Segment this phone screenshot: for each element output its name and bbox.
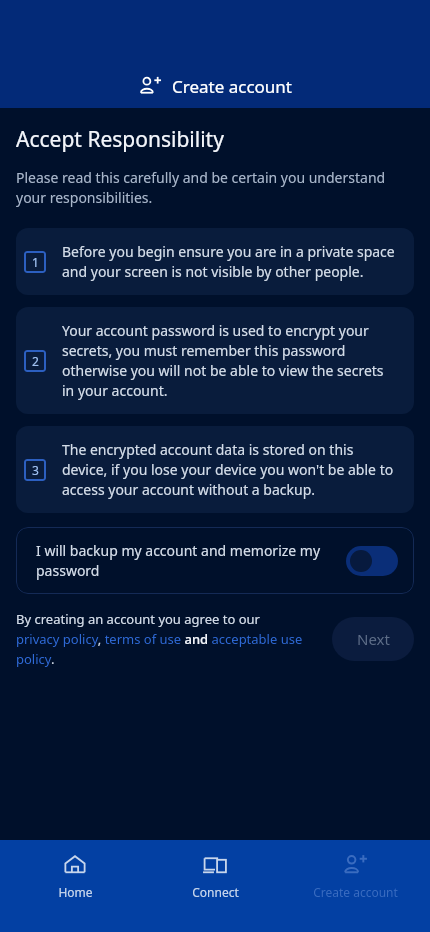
staticText: I will backup my account and memorize my… <box>36 541 334 580</box>
staticText: 3 <box>32 462 39 478</box>
staticText: Accept Responsibility <box>16 125 224 154</box>
staticText: Please read this carefully and be certai… <box>16 168 408 208</box>
staticText: The encrypted account data is stored on … <box>62 440 398 499</box>
button[interactable]: 3 <box>16 426 414 513</box>
staticText: 1 <box>32 254 39 270</box>
staticText: Next <box>357 629 390 649</box>
staticText: Create account <box>172 75 292 98</box>
staticText: 2 <box>32 353 39 369</box>
button[interactable]: I will backup my account and memorize my… <box>16 527 414 594</box>
staticText: Connect <box>192 884 239 900</box>
button[interactable]: Backup confirmation toggle <box>346 546 398 576</box>
staticText: Your account password is used to encrypt… <box>62 321 398 400</box>
button[interactable]: 2 <box>16 307 414 414</box>
button[interactable]: Next <box>332 617 414 661</box>
button[interactable]: 1 <box>16 228 414 295</box>
button[interactable]: Home <box>10 840 140 932</box>
staticText: By creating an account you agree to our … <box>16 610 322 668</box>
staticText: Before you begin ensure you are in a pri… <box>62 242 398 281</box>
button[interactable]: Create account <box>290 840 420 932</box>
staticText: Create account <box>313 884 398 900</box>
button[interactable]: Connect <box>150 840 280 932</box>
staticText: Home <box>58 884 93 900</box>
